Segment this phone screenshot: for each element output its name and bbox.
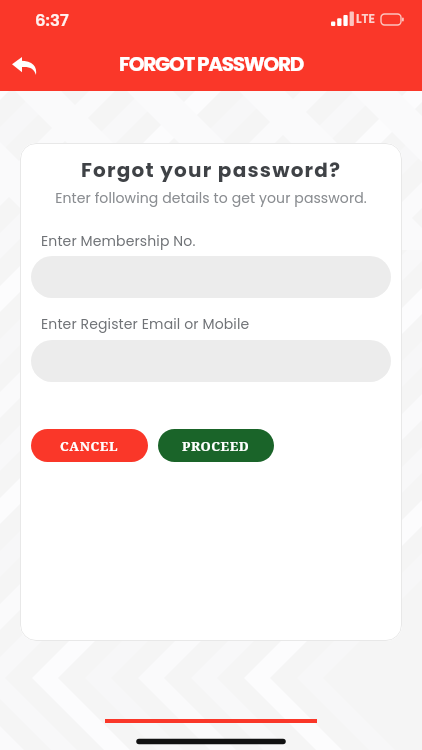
staticText: CANCEL xyxy=(60,437,119,455)
button[interactable]: Back xyxy=(3,44,45,86)
staticText: 6:37 xyxy=(35,9,69,32)
button[interactable]: PROCEED xyxy=(158,429,274,462)
button[interactable]: CANCEL xyxy=(31,429,148,462)
staticText: PROCEED xyxy=(182,437,250,455)
staticText: LTE xyxy=(356,10,375,27)
staticText: Enter following details to get your pass… xyxy=(20,188,402,208)
staticText: FORGOT PASSWORD xyxy=(119,50,304,78)
staticText: Enter Register Email or Mobile xyxy=(41,314,250,334)
staticText: Forgot your password? xyxy=(20,156,402,184)
staticText: Enter Membership No. xyxy=(41,231,196,251)
